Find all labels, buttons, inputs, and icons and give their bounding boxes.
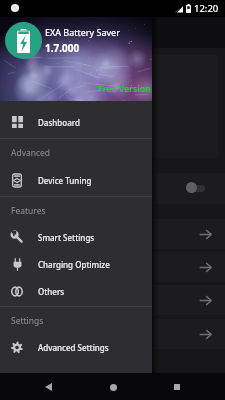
button[interactable]: Back — [36, 375, 60, 399]
button[interactable]: Dashboard — [0, 108, 152, 136]
button[interactable]: Advanced Settings — [0, 333, 152, 361]
staticText: Free Version — [98, 83, 151, 95]
staticText: Smart Settings — [38, 232, 95, 243]
button[interactable]: Device Tuning — [0, 166, 152, 194]
staticText: Others — [38, 286, 65, 297]
button[interactable] — [0, 319, 225, 349]
staticText: Advanced — [11, 147, 51, 159]
button[interactable]: Home — [101, 375, 125, 399]
button[interactable]: App icon — [5, 22, 42, 59]
staticText: 1,200 — [9, 83, 33, 95]
button[interactable]: Charging Optimize — [0, 250, 152, 278]
staticText: Settings — [11, 315, 44, 327]
staticText: 1.7.000 — [45, 41, 80, 55]
button[interactable]: Recents — [165, 375, 189, 399]
staticText: Device Tuning — [38, 175, 92, 186]
staticText: Advanced Settings — [38, 342, 109, 353]
button[interactable] — [0, 173, 225, 204]
staticText: Dashboard — [38, 117, 80, 128]
staticText: Charging Optimize — [38, 259, 110, 270]
staticText: 12:20 — [194, 2, 219, 15]
button[interactable]: Others — [0, 277, 152, 305]
staticText: Features — [11, 205, 46, 217]
button[interactable] — [0, 252, 225, 282]
button[interactable]: Free Version — [98, 83, 151, 95]
button[interactable] — [0, 219, 225, 249]
button[interactable] — [0, 285, 225, 315]
staticText: EXA Battery Saver — [45, 26, 120, 38]
button[interactable]: Smart Settings — [0, 223, 152, 251]
